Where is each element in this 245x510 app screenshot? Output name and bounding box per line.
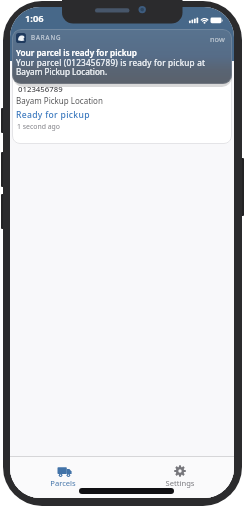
- staticText: Settings: [150, 478, 210, 488]
- staticText: 1:06: [25, 12, 44, 25]
- staticText: now: [210, 34, 225, 44]
- button[interactable]: 0123456789: [10, 83, 234, 145]
- button[interactable]: Settings: [150, 462, 210, 494]
- staticText: Parcels: [33, 478, 93, 488]
- staticText: Your parcel (0123456789) is ready for pi…: [16, 57, 206, 68]
- staticText: Ready for pickup: [16, 109, 90, 121]
- button[interactable]: Parcels: [33, 462, 93, 494]
- button[interactable]: BARANG: [12, 29, 232, 84]
- staticText: BARANG: [31, 33, 62, 41]
- staticText: Your parcel is ready for pickup: [16, 47, 137, 58]
- staticText: 1 second ago: [17, 122, 60, 131]
- staticText: 0123456789: [18, 84, 63, 95]
- staticText: Bayam Pickup Location.: [16, 66, 108, 77]
- staticText: Bayam Pickup Location: [16, 95, 103, 106]
